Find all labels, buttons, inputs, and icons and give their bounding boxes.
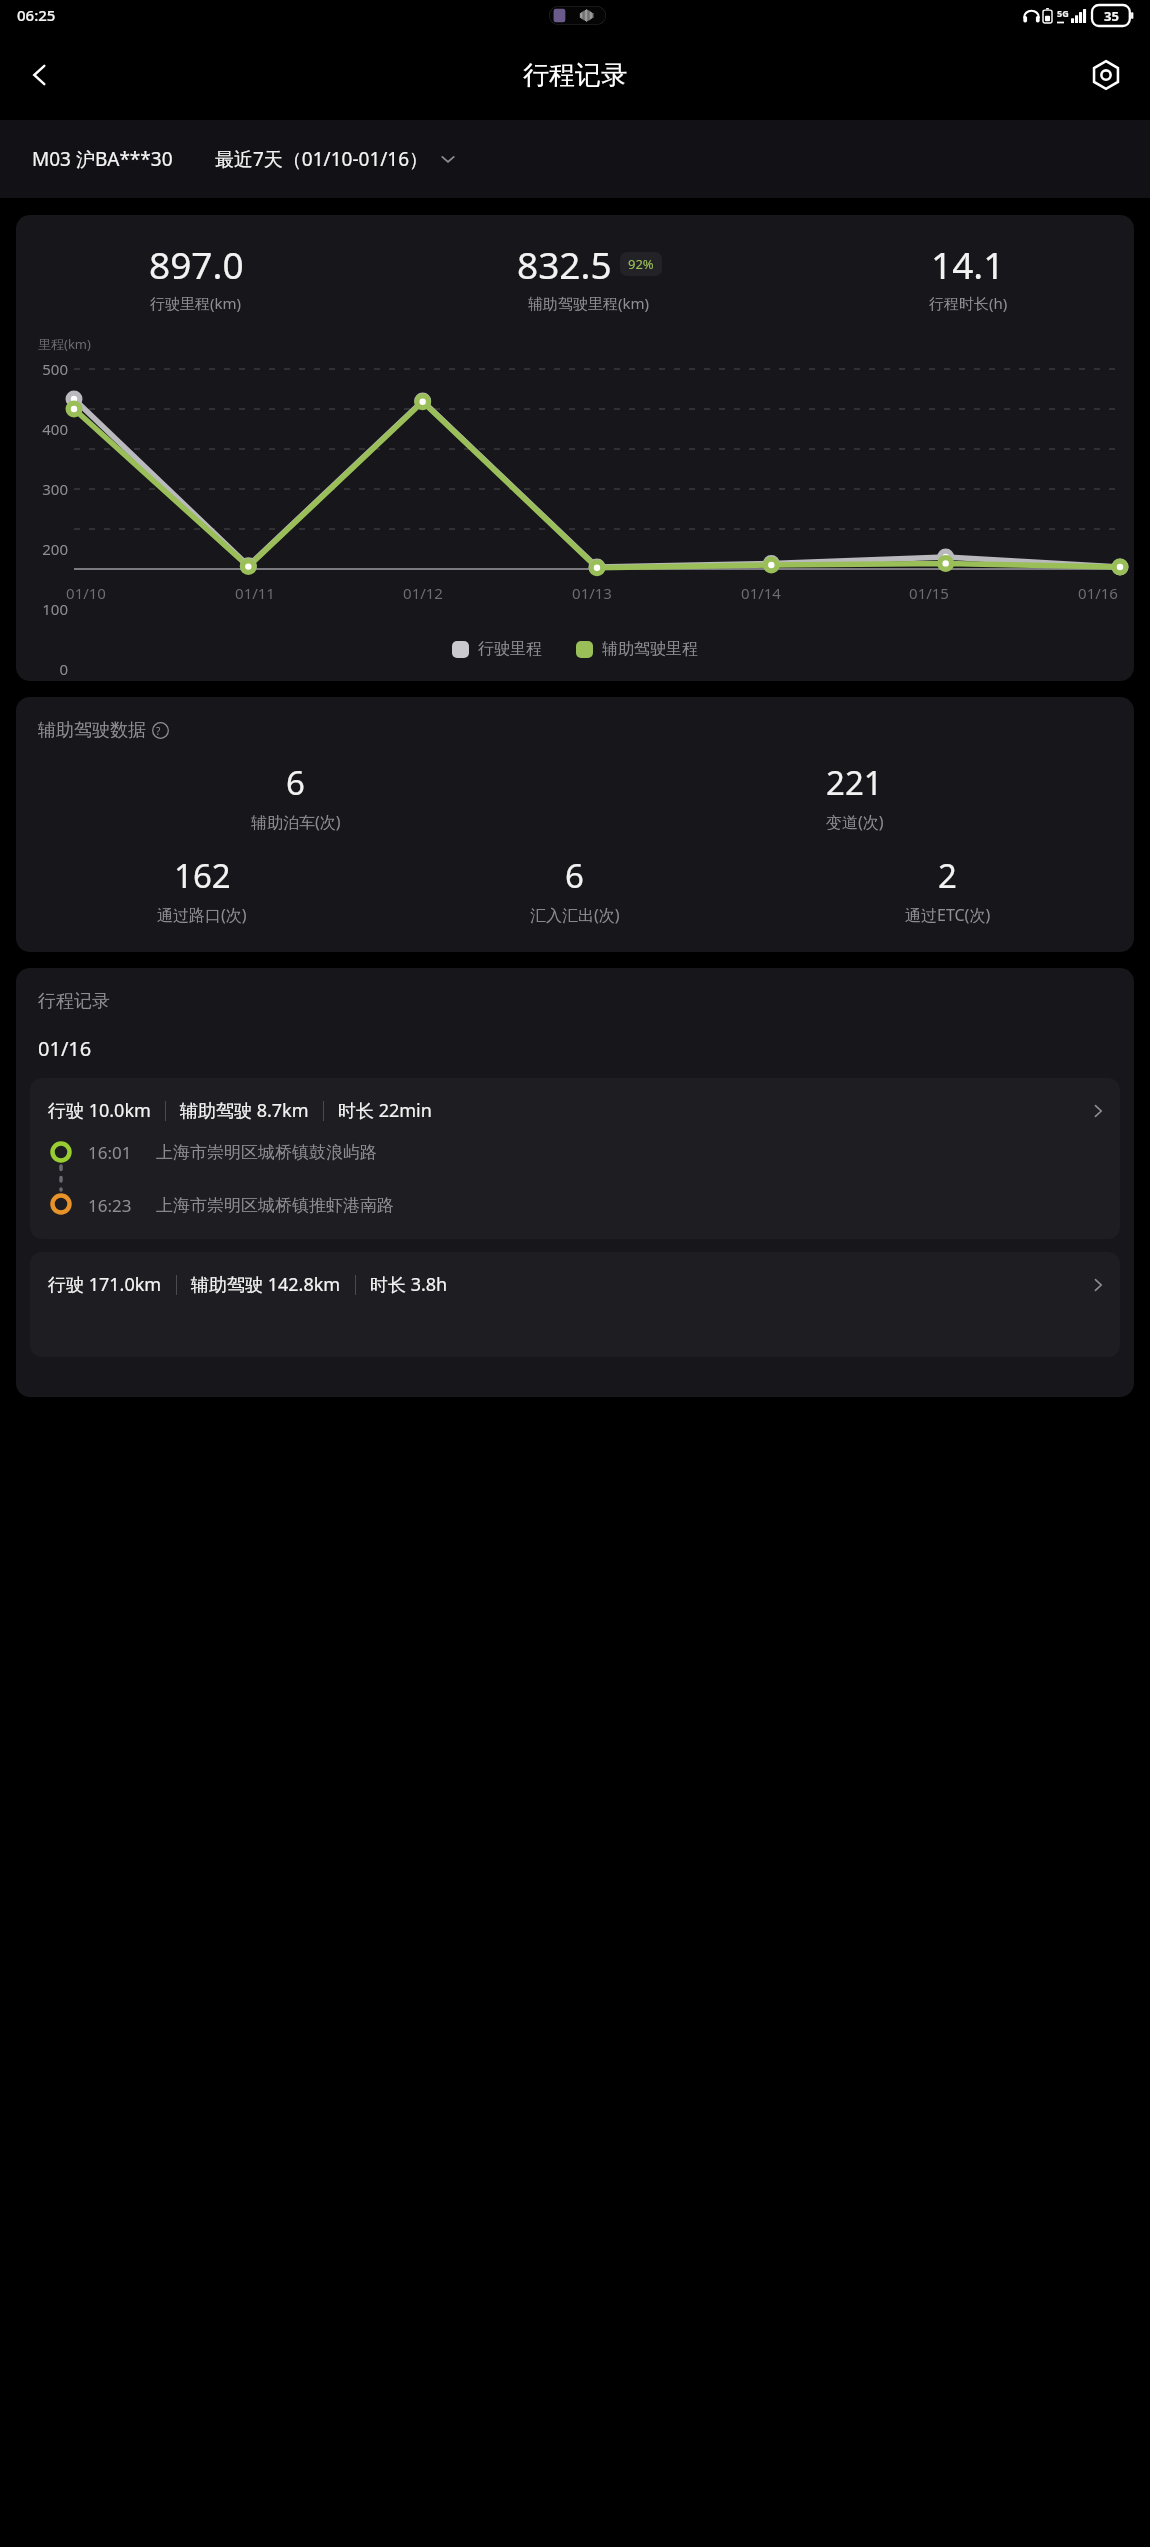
staticText: 01/10 bbox=[66, 583, 106, 603]
staticText: 辅助泊车(次) bbox=[251, 811, 341, 833]
staticText: 2 bbox=[938, 853, 957, 898]
staticText: 辅助驾驶数据 bbox=[38, 719, 146, 742]
button[interactable]: 辅助驾驶数据 bbox=[38, 719, 174, 742]
staticText: 辅助驾驶 8.7km bbox=[180, 1098, 309, 1123]
staticText: 通过ETC(次) bbox=[905, 904, 991, 926]
staticText: 400 bbox=[42, 419, 68, 439]
staticText: 500 bbox=[42, 359, 68, 379]
staticText: 01/14 bbox=[741, 583, 781, 603]
staticText: 0 bbox=[59, 659, 68, 679]
staticText: 100 bbox=[42, 599, 68, 619]
staticText: 行驶里程(km) bbox=[150, 293, 242, 313]
button[interactable]: Back bbox=[8, 43, 72, 107]
staticText: 上海市崇明区城桥镇推虾港南路 bbox=[156, 1195, 394, 1216]
staticText: 01/15 bbox=[909, 583, 949, 603]
staticText: 01/16 bbox=[38, 1035, 92, 1062]
staticText: 通过路口(次) bbox=[157, 904, 247, 926]
staticText: 897.0 bbox=[149, 239, 244, 289]
staticText: 92% bbox=[628, 255, 654, 273]
staticText: 辅助驾驶里程(km) bbox=[528, 293, 650, 313]
other: Help bbox=[152, 722, 169, 739]
staticText: 汇入汇出(次) bbox=[530, 904, 620, 926]
staticText: 行驶里程 bbox=[478, 639, 542, 659]
staticText: 辅助驾驶里程 bbox=[602, 639, 698, 659]
staticText: 16:01 bbox=[88, 1141, 132, 1164]
staticText: 14.1 bbox=[931, 239, 1005, 289]
staticText: 里程(km) bbox=[38, 335, 91, 353]
staticText: 辅助驾驶 142.8km bbox=[191, 1272, 341, 1297]
staticText: 162 bbox=[174, 853, 231, 898]
staticText: 上海市崇明区城桥镇鼓浪屿路 bbox=[156, 1142, 377, 1163]
staticText: 221 bbox=[826, 760, 883, 805]
staticText: 最近7天（01/10-01/16） bbox=[215, 146, 429, 172]
staticText: 06:25 bbox=[17, 5, 56, 25]
staticText: 200 bbox=[42, 539, 68, 559]
staticText: 832.5 bbox=[517, 239, 612, 289]
staticText: 行程时长(h) bbox=[929, 293, 1008, 313]
staticText: 行驶 171.0km bbox=[48, 1272, 162, 1297]
staticText: 01/13 bbox=[572, 583, 612, 603]
staticText: 01/11 bbox=[235, 583, 275, 603]
staticText: 5G bbox=[1057, 7, 1069, 19]
staticText: 16:23 bbox=[88, 1194, 132, 1217]
staticText: ? bbox=[156, 724, 161, 738]
staticText: 6 bbox=[565, 853, 584, 898]
staticText: 300 bbox=[42, 479, 68, 499]
staticText: M03 沪BA***30 bbox=[32, 146, 173, 172]
button[interactable]: M03 沪BA***30 bbox=[0, 120, 1150, 198]
staticText: 行程记录 bbox=[523, 59, 627, 92]
button[interactable]: Settings bbox=[1076, 45, 1136, 105]
staticText: 行程记录 bbox=[38, 990, 110, 1013]
staticText: 变道(次) bbox=[826, 811, 884, 833]
staticText: 35 bbox=[1104, 7, 1119, 25]
staticText: 01/12 bbox=[403, 583, 443, 603]
button[interactable]: 行驶 171.0km bbox=[30, 1252, 1120, 1357]
staticText: 01/16 bbox=[1078, 583, 1118, 603]
button[interactable]: 行驶 10.0km bbox=[30, 1078, 1120, 1239]
staticText: 时长 22min bbox=[338, 1098, 432, 1123]
staticText: 行驶 10.0km bbox=[48, 1098, 151, 1123]
staticText: 6 bbox=[286, 760, 305, 805]
staticText: 时长 3.8h bbox=[370, 1272, 448, 1297]
